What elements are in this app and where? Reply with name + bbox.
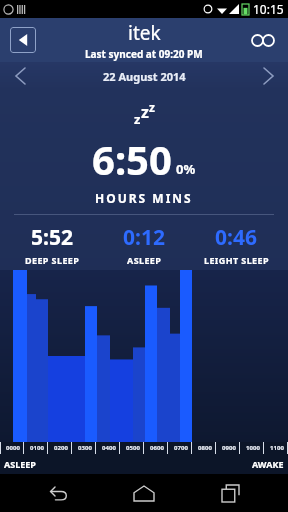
staticText: 0:46: [215, 223, 257, 252]
staticText: itek: [128, 20, 161, 46]
button[interactable]: Previous day: [0, 62, 40, 90]
staticText: 0200: [51, 444, 68, 452]
button[interactable]: Next day: [248, 62, 288, 90]
staticText: ASLEEP: [127, 254, 162, 266]
button[interactable]: 0:46: [190, 223, 282, 266]
staticText: 10:15: [253, 1, 284, 17]
button[interactable]: Back: [10, 27, 36, 53]
staticText: z: [141, 101, 149, 123]
button[interactable]: Home: [117, 474, 171, 512]
staticText: HOURS MINS: [95, 190, 193, 206]
staticText: z: [149, 99, 155, 115]
staticText: 0500: [123, 444, 140, 452]
button[interactable]: 0:12: [98, 223, 190, 266]
staticText: 0900: [219, 444, 236, 452]
staticText: 0800: [195, 444, 212, 452]
staticText: ASLEEP: [4, 458, 36, 470]
button[interactable]: Recents: [203, 474, 257, 512]
staticText: 0000: [3, 444, 20, 452]
staticText: 0:12: [123, 223, 165, 252]
staticText: 0100: [27, 444, 44, 452]
staticText: AWAKE: [252, 458, 284, 470]
staticText: 1000: [243, 444, 260, 452]
button[interactable]: 5:52: [6, 223, 98, 266]
staticText: 0600: [147, 444, 164, 452]
staticText: DEEP SLEEP: [25, 254, 80, 266]
button[interactable]: Back: [32, 474, 86, 512]
button[interactable]: [0, 270, 288, 442]
staticText: 1100: [267, 444, 284, 452]
staticText: 0%: [176, 160, 196, 178]
button[interactable]: Sync: [248, 25, 278, 55]
staticText: 0300: [75, 444, 92, 452]
staticText: LEIGHT SLEEP: [204, 254, 269, 266]
staticText: 5:52: [31, 223, 73, 252]
staticText: 22 August 2014: [103, 69, 186, 84]
staticText: Last synced at 09:20 PM: [85, 47, 203, 61]
staticText: 0400: [99, 444, 116, 452]
staticText: 6:50: [92, 132, 172, 186]
staticText: z: [134, 110, 141, 128]
staticText: 0700: [171, 444, 188, 452]
